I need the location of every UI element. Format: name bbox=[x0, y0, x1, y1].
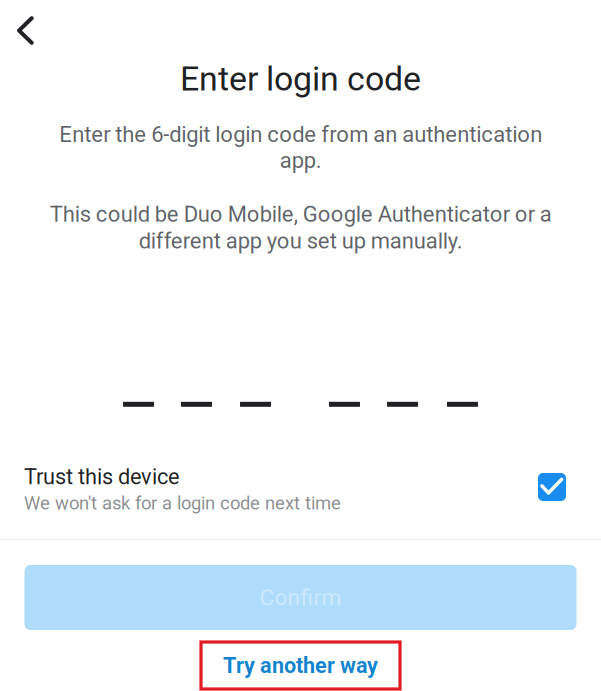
staticText: This could be Duo Mobile, Google Authent… bbox=[49, 201, 551, 254]
button[interactable]: Trust this device bbox=[0, 453, 601, 539]
staticText: Trust this device bbox=[24, 464, 180, 489]
button[interactable]: Back bbox=[0, 0, 48, 58]
button[interactable]: Try another way bbox=[201, 642, 400, 689]
staticText: Confirm bbox=[259, 584, 341, 611]
button[interactable]: Confirm bbox=[24, 565, 576, 630]
staticText: Enter login code bbox=[180, 59, 421, 99]
staticText: We won't ask for a login code next time bbox=[24, 492, 341, 514]
staticText: Try another way bbox=[223, 653, 378, 678]
staticText: Enter the 6-digit login code from an aut… bbox=[59, 122, 542, 173]
